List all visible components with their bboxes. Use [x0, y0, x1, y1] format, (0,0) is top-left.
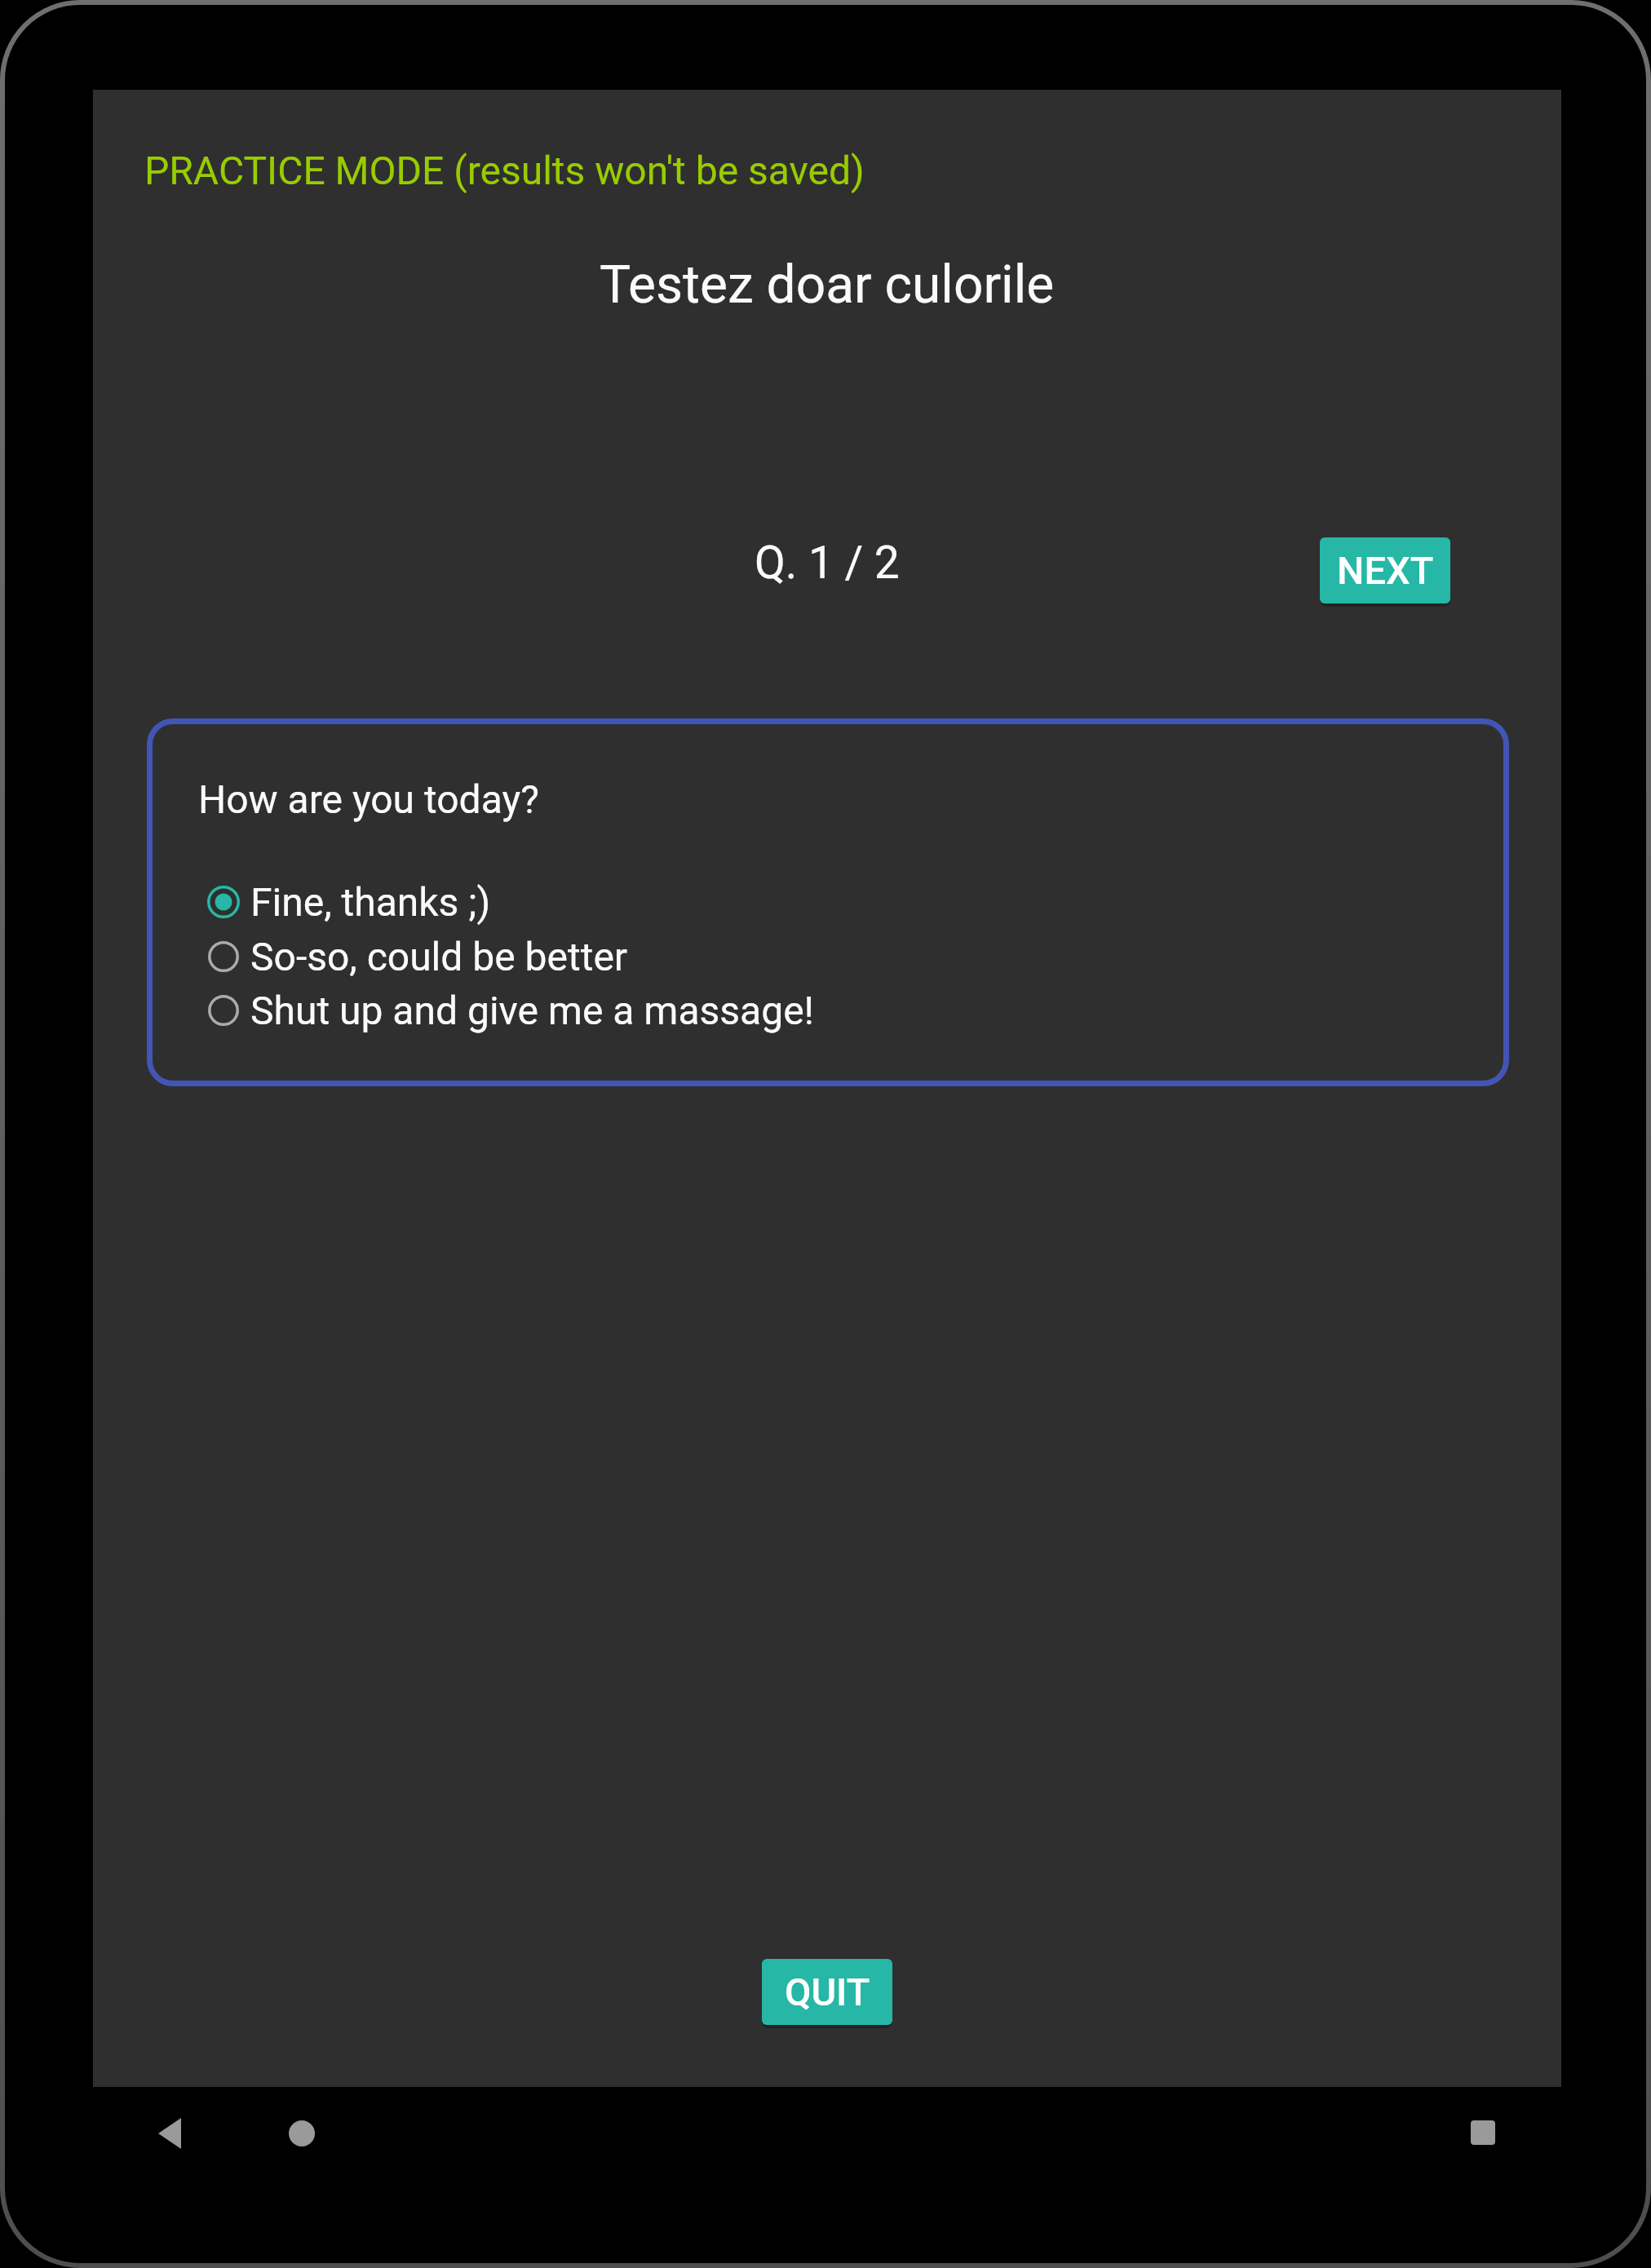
- button[interactable]: So-so, could be better: [207, 933, 628, 979]
- staticText: QUIT: [785, 1970, 870, 2014]
- staticText: NEXT: [1337, 548, 1434, 593]
- button[interactable]: QUIT: [762, 1959, 892, 2025]
- staticText: So-so, could be better: [250, 934, 628, 979]
- staticText: Q. 1 / 2: [755, 537, 900, 589]
- button[interactable]: Fine, thanks ;): [207, 878, 491, 925]
- staticText: Shut up and give me a massage!: [250, 988, 814, 1033]
- staticText: Fine, thanks ;): [250, 879, 491, 925]
- button[interactable]: NEXT: [1320, 537, 1450, 603]
- staticText: Testez doar culorile: [600, 254, 1055, 316]
- staticText: PRACTICE MODE (results won't be saved): [144, 148, 865, 193]
- button[interactable]: Shut up and give me a massage!: [207, 987, 814, 1033]
- staticText: How are you today?: [198, 776, 539, 822]
